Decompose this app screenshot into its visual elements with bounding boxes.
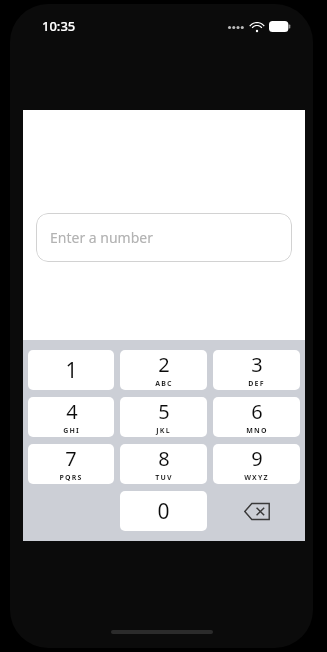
button[interactable]: 7: [28, 444, 114, 484]
staticText: ABC: [155, 379, 173, 389]
button[interactable]: 2: [120, 350, 207, 390]
staticText: 5: [158, 398, 170, 425]
button[interactable]: Enter a number: [36, 213, 292, 262]
staticText: 9: [251, 445, 263, 472]
staticText: 8: [158, 445, 170, 472]
button[interactable]: 5: [120, 397, 207, 437]
staticText: 6: [251, 398, 263, 425]
button[interactable]: 9: [213, 444, 300, 484]
button[interactable]: 3: [213, 350, 300, 390]
staticText: 10:35: [42, 17, 76, 35]
staticText: Enter a number: [50, 228, 153, 247]
staticText: JKL: [156, 426, 171, 436]
staticText: 2: [158, 351, 170, 378]
staticText: 0: [157, 497, 170, 526]
staticText: MNO: [246, 426, 268, 436]
button[interactable]: 0: [120, 491, 207, 531]
staticText: TUV: [155, 473, 173, 483]
staticText: WXYZ: [244, 473, 269, 483]
staticText: 7: [65, 445, 77, 472]
button[interactable]: 8: [120, 444, 207, 484]
button[interactable]: Backspace: [213, 491, 300, 531]
button[interactable]: 6: [213, 397, 300, 437]
staticText: 1: [65, 356, 78, 385]
staticText: GHI: [63, 426, 80, 436]
staticText: 4: [66, 398, 78, 425]
button[interactable]: 4: [28, 397, 114, 437]
staticText: PQRS: [59, 473, 83, 483]
button[interactable]: 1: [28, 350, 114, 390]
staticText: DEF: [248, 379, 265, 389]
staticText: 3: [251, 351, 263, 378]
